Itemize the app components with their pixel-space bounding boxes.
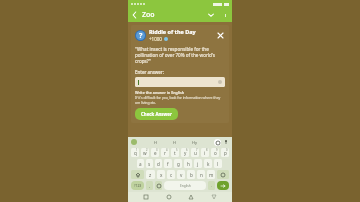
button[interactable]: j (194, 159, 202, 168)
staticText: m (209, 172, 214, 178)
staticText: c (170, 172, 173, 178)
staticText: 3 (156, 148, 158, 152)
staticText: d (157, 161, 160, 167)
staticText: Enter answer: (135, 69, 164, 75)
button[interactable]: d (155, 159, 162, 168)
staticText: b (190, 172, 193, 178)
staticText: Hy (192, 140, 198, 145)
button[interactable]: r (161, 148, 169, 157)
button[interactable]: Backspace (217, 170, 229, 179)
staticText: j (197, 161, 199, 167)
button[interactable]: Check Answer (135, 108, 178, 120)
staticText: , (149, 183, 151, 188)
button[interactable]: Language (155, 181, 162, 190)
button[interactable]: m (207, 170, 215, 179)
staticText: o (214, 150, 217, 156)
button[interactable]: f (164, 159, 172, 168)
staticText: e (154, 150, 157, 156)
button[interactable]: z (146, 170, 155, 179)
button[interactable]: n (197, 170, 205, 179)
button[interactable]: Recents (141, 192, 151, 202)
staticText: ? (139, 31, 143, 41)
staticText: n (200, 172, 203, 178)
staticText: k (207, 161, 210, 167)
staticText: a (139, 161, 142, 167)
staticText: 2 (146, 148, 148, 152)
staticText: i (204, 150, 206, 156)
staticText: Write the answer in English (135, 90, 185, 95)
staticText: . (211, 183, 213, 188)
button[interactable]: k (204, 159, 212, 168)
button[interactable]: v (177, 170, 185, 179)
staticText: s (148, 161, 151, 167)
button[interactable]: ?123 (131, 181, 144, 190)
button[interactable]: Expand (204, 8, 218, 22)
button[interactable]: Close (215, 30, 225, 40)
button[interactable]: s (146, 159, 153, 168)
button[interactable]: q (131, 148, 139, 157)
staticText: 4 (166, 148, 168, 152)
staticText: q (134, 150, 137, 156)
staticText: Zoo (142, 10, 155, 20)
button[interactable]: i (201, 148, 209, 157)
staticText: Check Answer (141, 111, 172, 117)
button[interactable]: l (214, 159, 222, 168)
staticText: Riddle of the Day (149, 28, 196, 35)
button[interactable]: a (137, 159, 144, 168)
staticText: y (184, 150, 187, 156)
button[interactable] (135, 77, 225, 87)
button[interactable]: Settings (214, 139, 221, 146)
staticText: u (194, 150, 197, 156)
staticText: 5 (176, 148, 178, 152)
staticText: 0 (226, 148, 228, 152)
button[interactable]: Period (208, 181, 215, 190)
button[interactable]: English (164, 181, 206, 190)
staticText: r (164, 150, 166, 156)
button[interactable]: g (174, 159, 182, 168)
button[interactable]: b (187, 170, 195, 179)
button[interactable]: y (181, 148, 189, 157)
staticText: p (224, 150, 227, 156)
button[interactable]: e (151, 148, 159, 157)
button[interactable]: x (157, 170, 165, 179)
staticText: ?123 (134, 183, 142, 188)
staticText: If it's difficult for you, look for info… (135, 95, 225, 105)
button[interactable]: h (184, 159, 192, 168)
staticText: 7 (196, 148, 198, 152)
staticText: 1 (136, 148, 138, 152)
staticText: 6 (186, 148, 188, 152)
button[interactable]: p (221, 148, 229, 157)
staticText: x (160, 172, 163, 178)
staticText: f (167, 161, 169, 167)
staticText: +1000 (149, 36, 162, 42)
staticText: v (180, 172, 183, 178)
staticText: w (143, 150, 147, 156)
button[interactable]: u (191, 148, 199, 157)
button[interactable]: Shift (131, 170, 144, 179)
button[interactable]: Voice input (223, 139, 229, 145)
staticText: "What insect is responsible for the poll… (135, 46, 225, 64)
staticText: 8 (206, 148, 208, 152)
staticText: 9 (216, 148, 218, 152)
staticText: English (180, 184, 191, 188)
staticText: H (154, 140, 157, 145)
staticText: t (174, 150, 176, 156)
button[interactable]: Google (131, 139, 137, 145)
button[interactable]: w (141, 148, 149, 157)
button[interactable]: Emoji (146, 181, 153, 190)
button[interactable]: c (167, 170, 175, 179)
staticText: z (149, 172, 152, 178)
staticText: H (173, 140, 176, 145)
button[interactable]: t (171, 148, 179, 157)
button[interactable]: Home (164, 192, 174, 202)
button[interactable]: Back (128, 8, 142, 22)
staticText: l (217, 161, 219, 167)
button[interactable]: o (211, 148, 219, 157)
staticText: h (187, 161, 190, 167)
button[interactable]: Keyboard hide (209, 192, 219, 202)
button[interactable]: More options (218, 8, 232, 22)
button[interactable]: Enter (217, 181, 229, 190)
staticText: g (177, 161, 180, 167)
button[interactable]: Back (186, 192, 196, 202)
